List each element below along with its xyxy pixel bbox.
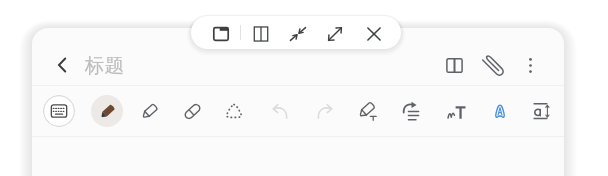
button[interactable]: Pen settings [349, 92, 387, 130]
button[interactable]: Paragraph [392, 92, 430, 130]
button[interactable]: More options [512, 47, 548, 83]
button[interactable]: Keyboard [43, 95, 75, 127]
button[interactable]: Font [523, 92, 561, 130]
button[interactable]: Pen [91, 95, 123, 127]
button[interactable]: Shape recognition [481, 92, 519, 130]
button[interactable]: Highlighter [130, 92, 168, 130]
button[interactable]: Expand [319, 18, 351, 50]
button[interactable]: Convert to text [438, 92, 476, 130]
button[interactable]: Back [44, 47, 80, 83]
staticText: 标题 [85, 53, 124, 78]
button[interactable]: Eraser [173, 92, 211, 130]
button[interactable]: Attach [475, 47, 511, 83]
button[interactable]: Window mode [205, 18, 237, 50]
button[interactable]: Lasso select [215, 92, 253, 130]
button[interactable]: Close [358, 18, 390, 50]
button[interactable]: Split screen [245, 18, 277, 50]
button[interactable]: Redo [305, 92, 343, 130]
button[interactable]: Collapse [282, 18, 314, 50]
button[interactable]: Undo [261, 92, 299, 130]
button[interactable]: Book [436, 47, 472, 83]
